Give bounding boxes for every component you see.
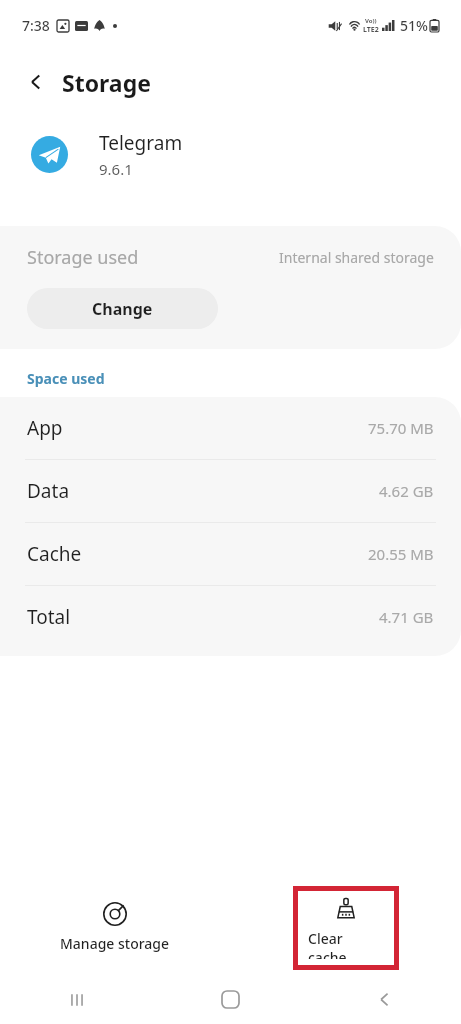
staticText: 9.6.1 — [99, 159, 133, 179]
staticText: Internal shared storage — [279, 248, 434, 267]
staticText: 51% — [400, 16, 428, 35]
staticText: Change — [92, 298, 153, 320]
button[interactable]: Clear cache — [298, 891, 394, 965]
button[interactable]: Home — [153, 975, 307, 1024]
staticText: Clear cache — [308, 929, 384, 959]
button[interactable]: Change — [27, 288, 218, 329]
staticText: 75.70 MB — [368, 418, 434, 438]
button[interactable]: Recent apps — [0, 975, 153, 1024]
staticText: Data — [27, 478, 70, 504]
staticText: 4.62 GB — [379, 481, 434, 501]
staticText: App — [27, 415, 63, 441]
staticText: Storage — [62, 67, 151, 98]
staticText: Storage used — [27, 245, 139, 270]
staticText: Cache — [27, 541, 82, 567]
button[interactable]: Total — [0, 586, 461, 648]
button[interactable]: Cache — [0, 523, 461, 586]
button[interactable]: Back — [307, 975, 461, 1024]
staticText: Vo)) — [365, 17, 377, 25]
staticText: Total — [27, 604, 71, 630]
staticText: 4.71 GB — [379, 607, 434, 627]
button[interactable]: Data — [0, 460, 461, 523]
staticText: 20.55 MB — [368, 544, 434, 564]
button[interactable]: Back — [16, 62, 56, 102]
staticText: 7:38 — [22, 16, 50, 35]
button[interactable]: Telegram — [0, 114, 461, 194]
button[interactable]: Manage storage — [50, 896, 180, 959]
button[interactable]: App — [0, 397, 461, 460]
staticText: Manage storage — [60, 934, 170, 953]
staticText: Telegram — [99, 130, 183, 156]
staticText: LTE2 — [363, 25, 379, 35]
staticText: Space used — [27, 369, 105, 388]
